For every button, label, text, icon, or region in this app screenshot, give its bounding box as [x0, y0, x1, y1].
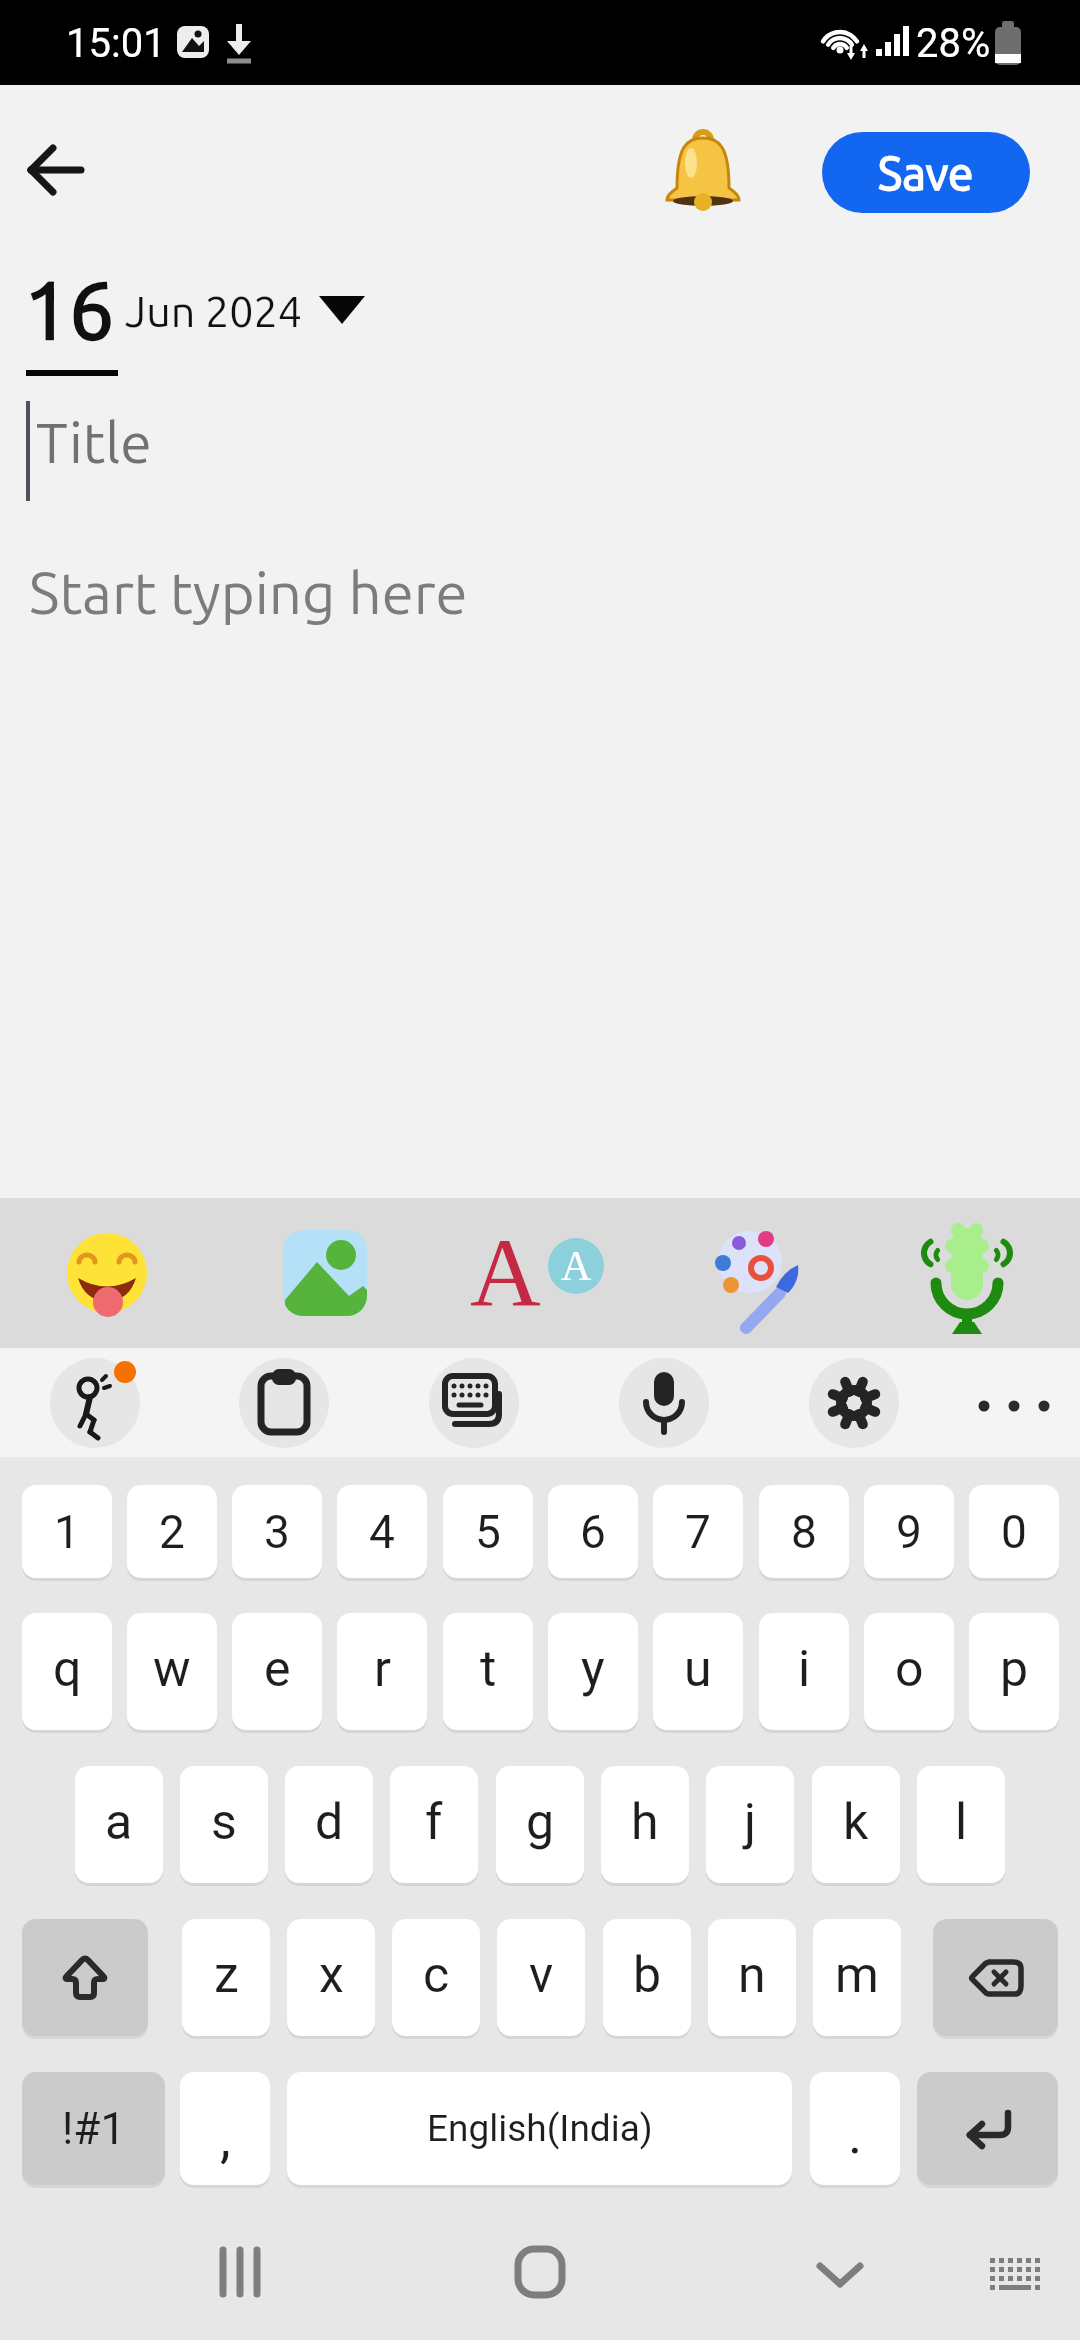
button[interactable]: o — [864, 1613, 954, 1730]
staticText: 5 — [475, 1505, 501, 1559]
button[interactable]: w — [127, 1613, 217, 1730]
staticText: z — [214, 1946, 239, 2005]
staticText: l — [955, 1793, 968, 1852]
button[interactable]: e — [232, 1613, 322, 1730]
button[interactable]: , — [180, 2072, 270, 2185]
staticText: 0 — [1001, 1505, 1027, 1559]
staticText: s — [211, 1793, 237, 1852]
button[interactable] — [706, 1223, 806, 1333]
staticText: 28% — [916, 20, 991, 67]
staticText: v — [529, 1946, 554, 2005]
button[interactable]: !#1 — [22, 2072, 165, 2185]
staticText: f — [425, 1793, 443, 1852]
staticText: 15:01 — [66, 20, 166, 67]
button[interactable]: x — [287, 1919, 375, 2036]
button[interactable]: i — [759, 1613, 849, 1730]
button[interactable]: n — [708, 1919, 796, 2036]
button[interactable]: 9 — [864, 1485, 954, 1578]
staticText: 9 — [896, 1505, 922, 1559]
button[interactable]: y — [548, 1613, 638, 1730]
button[interactable]: r — [337, 1613, 427, 1730]
button[interactable]: Save — [822, 132, 1030, 213]
button[interactable] — [965, 2244, 1065, 2300]
button[interactable]: k — [812, 1766, 900, 1883]
button[interactable]: j — [706, 1766, 794, 1883]
staticText: Jun 2024 — [125, 287, 303, 335]
button[interactable] — [429, 1358, 519, 1448]
button[interactable]: English(India) — [287, 2072, 792, 2185]
button[interactable]: 3 — [232, 1485, 322, 1578]
button[interactable]: 0 — [969, 1485, 1059, 1578]
staticText: Save — [878, 147, 974, 199]
staticText: y — [581, 1640, 605, 1699]
button[interactable] — [619, 1358, 709, 1448]
staticText: u — [684, 1640, 712, 1699]
staticText: d — [315, 1793, 344, 1852]
button[interactable]: l — [917, 1766, 1005, 1883]
button[interactable]: a — [75, 1766, 163, 1883]
staticText: 1 — [54, 1505, 80, 1559]
button[interactable]: m — [813, 1919, 901, 2036]
button[interactable]: 5 — [443, 1485, 533, 1578]
button[interactable]: 2 — [127, 1485, 217, 1578]
button[interactable]: 6 — [548, 1485, 638, 1578]
button[interactable] — [25, 140, 89, 200]
button[interactable] — [917, 2072, 1058, 2185]
button[interactable]: h — [601, 1766, 689, 1883]
staticText: 4 — [369, 1505, 395, 1559]
staticText: b — [633, 1946, 662, 2005]
staticText: . — [848, 2103, 863, 2166]
staticText: 8 — [791, 1505, 817, 1559]
button[interactable]: z — [182, 1919, 270, 2036]
staticText: x — [319, 1946, 344, 2005]
button[interactable] — [969, 1358, 1059, 1448]
button[interactable]: 7 — [653, 1485, 743, 1578]
staticText: j — [744, 1793, 756, 1852]
staticText: 16 — [24, 264, 115, 354]
button[interactable]: d — [285, 1766, 373, 1883]
button[interactable] — [22, 1919, 148, 2036]
staticText: w — [153, 1640, 191, 1699]
staticText: 6 — [580, 1505, 606, 1559]
staticText: 2 — [159, 1505, 185, 1559]
button[interactable]: A — [470, 1216, 620, 1326]
button[interactable]: b — [603, 1919, 691, 2036]
staticText: 7 — [685, 1505, 711, 1559]
button[interactable] — [190, 2244, 290, 2300]
button[interactable] — [922, 1222, 1012, 1334]
button[interactable] — [809, 1358, 899, 1448]
staticText: , — [220, 2107, 231, 2170]
button[interactable] — [50, 1358, 140, 1448]
button[interactable]: . — [810, 2072, 900, 2185]
staticText: p — [1000, 1640, 1029, 1699]
staticText: A — [561, 1243, 592, 1290]
button[interactable]: 16 — [24, 264, 115, 354]
button[interactable]: 1 — [22, 1485, 112, 1578]
button[interactable] — [490, 2244, 590, 2300]
button[interactable] — [67, 1233, 147, 1313]
button[interactable]: 4 — [337, 1485, 427, 1578]
button[interactable] — [933, 1919, 1058, 2036]
staticText: n — [738, 1946, 766, 2005]
button[interactable]: f — [390, 1766, 478, 1883]
staticText: c — [423, 1946, 450, 2005]
button[interactable]: v — [497, 1919, 585, 2036]
staticText: m — [835, 1946, 879, 2005]
staticText: Start typing here — [29, 560, 468, 625]
button[interactable] — [790, 2244, 890, 2300]
staticText: English(India) — [427, 2107, 653, 2150]
button[interactable]: 8 — [759, 1485, 849, 1578]
button[interactable]: q — [22, 1613, 112, 1730]
staticText: h — [631, 1793, 659, 1852]
button[interactable]: p — [969, 1613, 1059, 1730]
button[interactable]: g — [496, 1766, 584, 1883]
button[interactable] — [283, 1230, 367, 1316]
button[interactable]: t — [443, 1613, 533, 1730]
button[interactable]: u — [653, 1613, 743, 1730]
button[interactable] — [662, 126, 744, 218]
button[interactable]: s — [180, 1766, 268, 1883]
staticText: i — [798, 1640, 811, 1699]
staticText: e — [264, 1640, 291, 1699]
button[interactable]: c — [392, 1919, 480, 2036]
button[interactable] — [239, 1358, 329, 1448]
